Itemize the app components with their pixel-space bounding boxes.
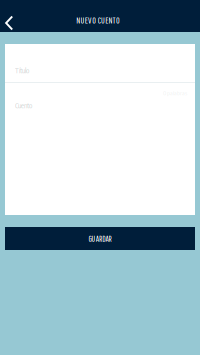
staticText: NUEVO CUENTO — [76, 15, 120, 25]
staticText: Cuento — [15, 101, 32, 110]
button[interactable]: GUARDAR — [0, 227, 200, 250]
staticText: 0 palabras — [163, 89, 187, 96]
button[interactable]: Back — [0, 0, 18, 32]
staticText: GUARDAR — [88, 234, 112, 243]
staticText: Título — [15, 66, 29, 75]
